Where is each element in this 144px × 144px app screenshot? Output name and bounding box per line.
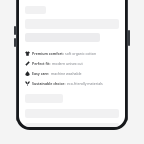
button[interactable]: Volume down bbox=[14, 38, 16, 47]
staticText: Perfect fit: bbox=[32, 61, 51, 66]
staticText: modern unisex cut bbox=[52, 61, 83, 66]
staticText: eco-friendly materials bbox=[67, 81, 103, 86]
staticText: soft organic cotton bbox=[65, 51, 97, 56]
button[interactable]: Premium comfort: bbox=[25, 50, 119, 57]
staticText: Sustainable choice: bbox=[32, 81, 66, 86]
button[interactable]: Volume up bbox=[14, 26, 16, 35]
staticText: machine washable bbox=[51, 71, 82, 76]
button[interactable]: Easy care: bbox=[25, 70, 119, 77]
button[interactable]: Sustainable choice: bbox=[25, 80, 119, 87]
button[interactable]: Power bbox=[128, 30, 130, 46]
staticText: Premium comfort: bbox=[32, 51, 64, 56]
staticText: Easy care: bbox=[32, 71, 50, 76]
button[interactable]: Perfect fit: bbox=[25, 60, 119, 67]
